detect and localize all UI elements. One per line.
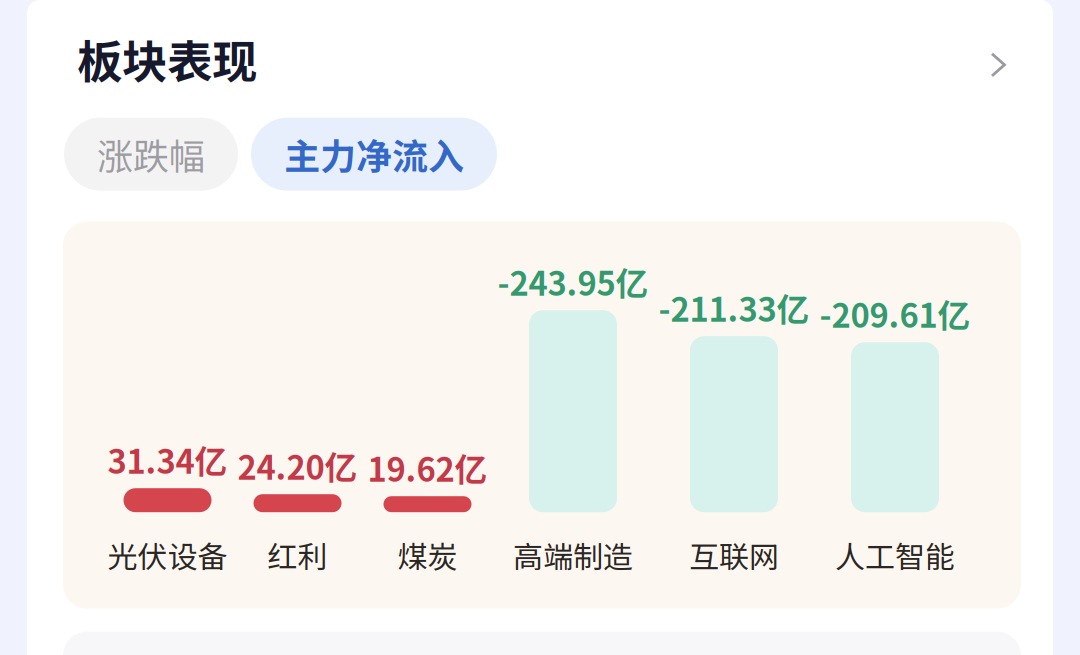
staticText: 红利	[267, 533, 327, 577]
staticText: 高端制造	[513, 533, 633, 577]
staticText: 光伏设备	[107, 533, 227, 577]
staticText: -209.61亿	[819, 290, 970, 337]
staticText: 煤炭	[397, 533, 457, 577]
button[interactable]: 涨跌幅	[64, 118, 238, 191]
staticText: 互联网	[689, 533, 779, 577]
staticText: -243.95亿	[497, 258, 648, 305]
staticText: 涨跌幅	[97, 128, 205, 180]
staticText: 19.62亿	[367, 444, 487, 491]
button[interactable]: 查看更多板块表现	[976, 36, 1012, 81]
button[interactable]: 主力净流入	[251, 118, 497, 191]
staticText: 31.34亿	[107, 436, 227, 483]
staticText: 24.20亿	[237, 442, 357, 489]
staticText: 人工智能	[835, 533, 955, 577]
staticText: -211.33亿	[658, 284, 809, 331]
staticText: 主力净流入	[284, 128, 464, 180]
staticText: 板块表现	[77, 26, 257, 92]
